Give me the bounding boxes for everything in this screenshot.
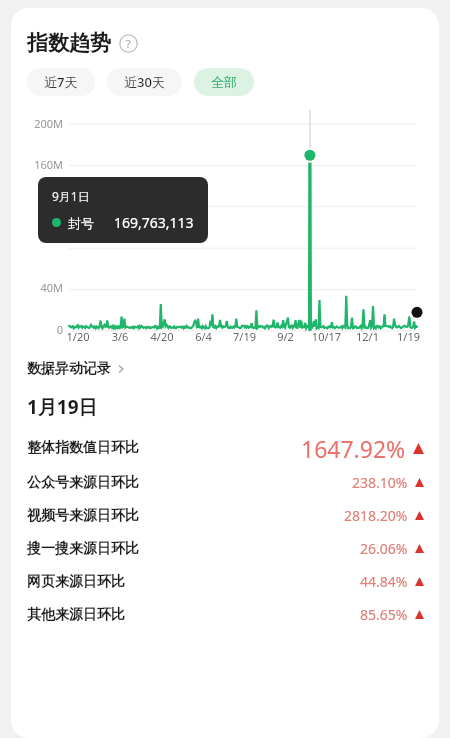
- staticText: 1647.92%: [301, 433, 406, 464]
- staticText: 12/1: [347, 329, 388, 344]
- staticText: 7/19: [224, 329, 265, 344]
- staticText: 44.84%: [360, 572, 408, 591]
- staticText: 1/19: [388, 329, 429, 344]
- staticText: 1月19日: [27, 394, 98, 420]
- button[interactable]: 近7天: [27, 68, 95, 96]
- staticText: 169,763,113: [114, 213, 194, 232]
- staticText: 公众号来源日环比: [27, 474, 139, 492]
- staticText: 3/6: [99, 329, 141, 344]
- staticText: 近30天: [124, 73, 165, 91]
- button[interactable]: 搜一搜来源日环比: [11, 532, 439, 565]
- staticText: 9月1日: [52, 188, 90, 204]
- staticText: 整体指数值日环比: [27, 439, 139, 457]
- staticText: 4/20: [141, 329, 183, 344]
- staticText: 搜一搜来源日环比: [27, 540, 139, 558]
- staticText: 全部: [211, 74, 237, 90]
- staticText: 指数趋势: [27, 30, 111, 56]
- button[interactable]: 其他来源日环比: [11, 598, 439, 631]
- button[interactable]: 视频号来源日环比: [11, 499, 439, 532]
- staticText: 160M: [13, 157, 63, 172]
- staticText: 其他来源日环比: [27, 606, 125, 624]
- staticText: 26.06%: [360, 539, 408, 558]
- staticText: 近7天: [44, 73, 78, 91]
- staticText: 9/2: [265, 329, 306, 344]
- button[interactable]: 网页来源日环比: [11, 565, 439, 598]
- staticText: ?: [126, 36, 131, 51]
- staticText: 40M: [13, 280, 63, 295]
- staticText: 网页来源日环比: [27, 573, 125, 591]
- staticText: 2818.20%: [344, 506, 408, 525]
- button[interactable]: 全部: [194, 68, 254, 96]
- button[interactable]: 近30天: [107, 68, 182, 96]
- staticText: 数据异动记录: [27, 360, 111, 378]
- staticText: 视频号来源日环比: [27, 507, 139, 525]
- button[interactable]: 帮助: [119, 34, 138, 53]
- staticText: 85.65%: [360, 605, 408, 624]
- staticText: 200M: [13, 116, 63, 131]
- staticText: 6/4: [183, 329, 224, 344]
- staticText: 10/17: [306, 329, 347, 344]
- staticText: 封号: [68, 215, 94, 231]
- button[interactable]: 公众号来源日环比: [11, 466, 439, 499]
- staticText: 1/20: [57, 329, 99, 344]
- button[interactable]: 数据异动记录: [27, 360, 439, 378]
- staticText: 238.10%: [352, 473, 408, 492]
- staticText: 0: [13, 322, 63, 337]
- button[interactable]: 整体指数值日环比: [11, 430, 439, 466]
